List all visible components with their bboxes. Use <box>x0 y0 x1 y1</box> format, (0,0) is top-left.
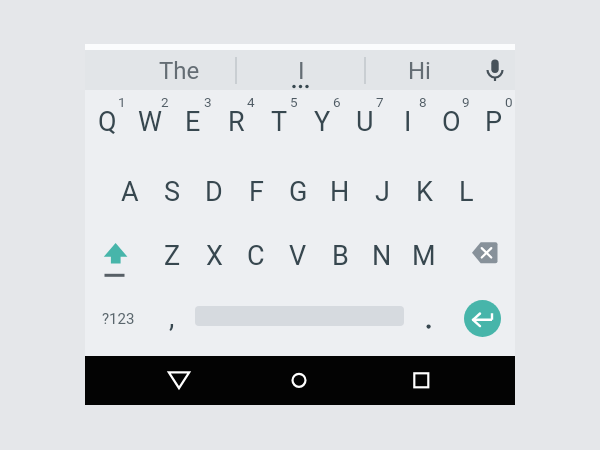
staticText: 8 <box>419 94 427 110</box>
staticText: K <box>416 176 433 208</box>
staticText: G <box>289 176 308 208</box>
button[interactable]: , <box>157 298 187 338</box>
staticText: 5 <box>290 94 298 110</box>
staticText: U <box>356 106 374 138</box>
button[interactable]: W <box>129 92 171 152</box>
staticText: 7 <box>376 94 384 110</box>
button[interactable]: Hi <box>374 51 464 91</box>
button[interactable]: ?123 <box>88 299 148 339</box>
staticText: 3 <box>204 94 212 110</box>
button[interactable] <box>85 222 149 289</box>
button[interactable]: Q <box>86 92 128 152</box>
button[interactable]: R <box>215 92 257 152</box>
staticText: C <box>247 240 265 272</box>
button[interactable]: C <box>235 226 277 286</box>
button[interactable] <box>149 356 209 405</box>
button[interactable] <box>477 52 513 88</box>
staticText: R <box>228 106 245 138</box>
staticText: O <box>442 106 461 138</box>
button[interactable]: B <box>319 226 361 286</box>
staticText: T <box>271 106 288 138</box>
button[interactable]: X <box>193 226 235 286</box>
button[interactable]: S <box>151 162 193 222</box>
staticText: B <box>332 240 349 272</box>
staticText: Hi <box>408 57 431 85</box>
button[interactable] <box>464 300 501 337</box>
button[interactable]: M <box>403 226 445 286</box>
button[interactable]: I <box>246 51 356 91</box>
staticText: 6 <box>333 94 341 110</box>
button[interactable]: Z <box>151 226 193 286</box>
staticText: J <box>375 176 390 208</box>
staticText: The <box>159 57 200 85</box>
staticText: S <box>164 176 181 208</box>
button[interactable]: K <box>403 162 445 222</box>
button[interactable]: N <box>361 226 403 286</box>
button[interactable] <box>391 356 451 405</box>
button[interactable]: O <box>430 92 472 152</box>
button[interactable]: L <box>445 162 487 222</box>
staticText: Z <box>164 240 181 272</box>
button[interactable]: D <box>193 162 235 222</box>
button[interactable]: Y <box>301 92 343 152</box>
staticText: Q <box>98 106 117 138</box>
staticText: X <box>206 240 223 272</box>
staticText: , <box>169 302 175 334</box>
staticText: 2 <box>161 94 169 110</box>
staticText: 9 <box>462 94 470 110</box>
button[interactable]: V <box>277 226 319 286</box>
button[interactable]: T <box>258 92 300 152</box>
staticText: F <box>249 176 264 208</box>
staticText: V <box>289 240 307 272</box>
staticText: 4 <box>247 94 255 110</box>
button[interactable]: H <box>319 162 361 222</box>
button[interactable]: J <box>361 162 403 222</box>
staticText: E <box>185 106 201 138</box>
button[interactable]: P <box>473 92 515 152</box>
button[interactable]: A <box>109 162 151 222</box>
staticText: W <box>138 106 162 138</box>
button[interactable]: E <box>172 92 214 152</box>
button[interactable]: G <box>277 162 319 222</box>
button[interactable]: U <box>344 92 386 152</box>
staticText: L <box>459 176 474 208</box>
staticText: A <box>121 176 139 208</box>
button[interactable] <box>269 356 329 405</box>
staticText: I <box>404 106 412 138</box>
button[interactable] <box>414 306 444 346</box>
staticText: H <box>330 176 350 208</box>
button[interactable] <box>451 222 515 289</box>
staticText: M <box>412 240 436 272</box>
staticText: N <box>372 240 392 272</box>
staticText: I <box>298 57 305 85</box>
staticText: P <box>485 106 503 138</box>
staticText: ?123 <box>102 310 135 328</box>
button[interactable]: F <box>235 162 277 222</box>
staticText: Y <box>314 106 331 138</box>
button[interactable]: I <box>387 92 429 152</box>
staticText: D <box>205 176 223 208</box>
staticText: 1 <box>118 94 126 110</box>
staticText: 0 <box>505 94 513 110</box>
button[interactable]: The <box>124 51 234 91</box>
